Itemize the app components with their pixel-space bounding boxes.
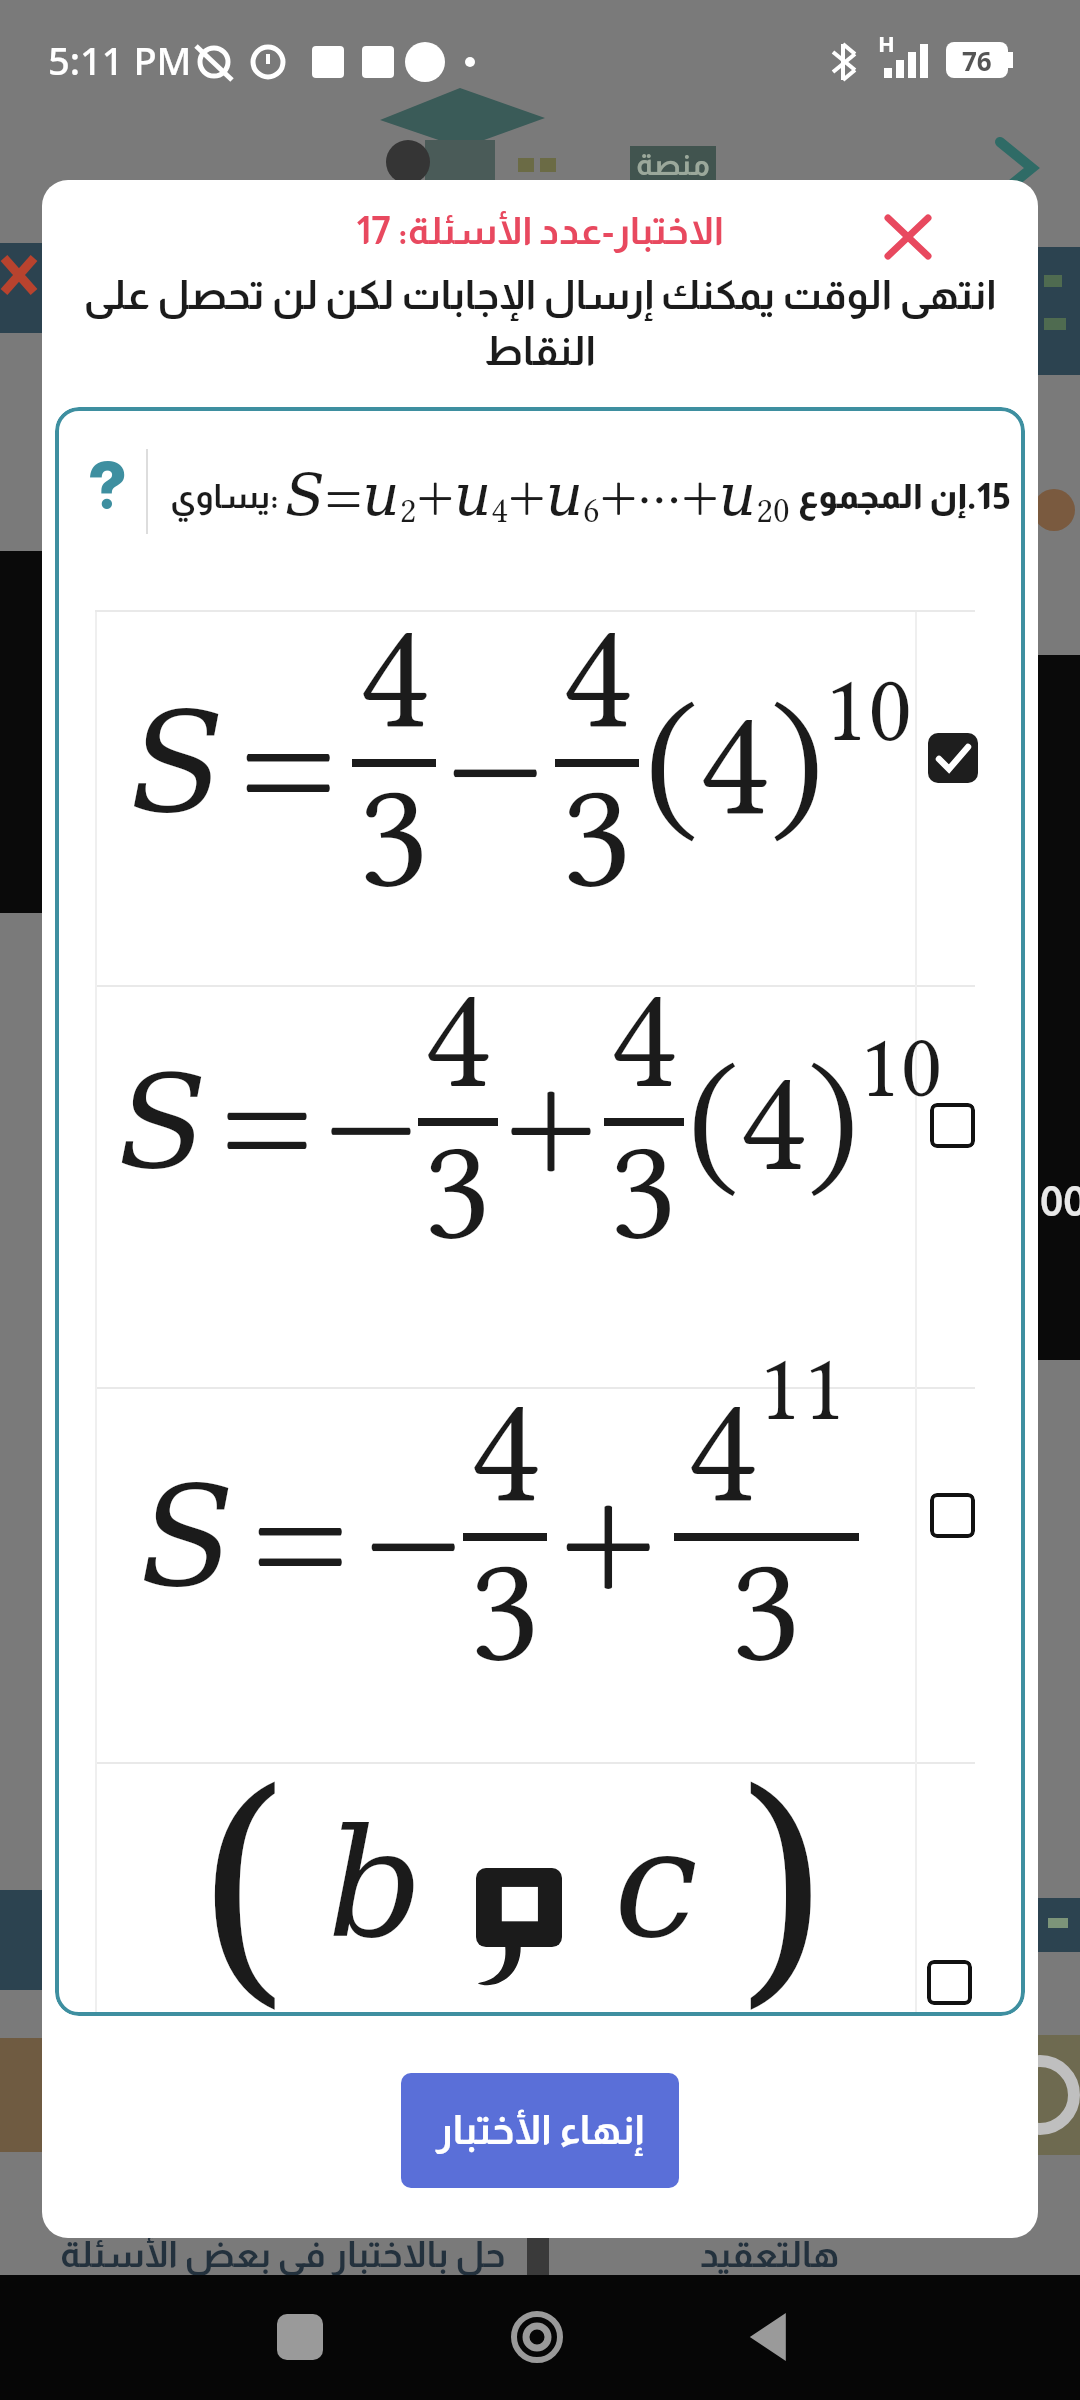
staticText: 11 [758,1334,847,1442]
staticText: 3 [610,1108,678,1273]
button[interactable] [930,1103,975,1148]
staticText: 4 [359,590,430,763]
staticText: يساوي: [170,478,279,515]
staticText: S [140,1457,235,1618]
staticText: 3 [424,1108,492,1273]
staticText: = [251,1451,350,1624]
staticText: + [504,1039,598,1204]
staticText: 3 [731,1523,802,1696]
staticText: S [130,683,225,844]
staticText: b [327,1797,424,1972]
staticText: 76 [962,43,992,78]
staticText: − [446,677,545,850]
staticText: 4 [470,1364,541,1537]
staticText: S [118,1046,208,1197]
staticText: 3 [359,749,430,922]
staticText: = [239,677,338,850]
button[interactable] [928,733,978,783]
staticText: − [324,1039,418,1204]
staticText: إن المجموع [798,477,967,515]
staticText: 3 [470,1523,541,1696]
staticText: (4) [688,1039,859,1204]
staticText: ) [733,1739,831,2016]
staticText: S=u2+u4+u6+⋯+u20 [285,461,790,531]
staticText: + [559,1451,658,1624]
button[interactable] [277,2314,323,2360]
staticText: H [878,28,895,58]
staticText: ? [87,449,127,523]
staticText: 10 [824,655,913,763]
button[interactable]: إنهاء الأختبار [401,2073,679,2188]
staticText: 00 [1040,1178,1080,1225]
staticText: إنهاء الأختبار [436,2108,644,2153]
staticText: انتهى الوقت يمكنك إرسال الإجابات لكن لن … [42,273,1038,373]
staticText: 4 [610,956,678,1121]
button[interactable] [745,2313,793,2361]
staticText: 4 [562,590,633,763]
staticText: منصة [636,148,710,181]
staticText: − [364,1451,463,1624]
staticText: 4 [687,1364,758,1537]
staticText: = [220,1039,314,1204]
button[interactable] [927,1960,972,2005]
staticText: 3 [562,749,633,922]
button[interactable] [930,1493,975,1538]
staticText: (4) [645,677,824,850]
staticText: هالتعقيد [700,2234,840,2274]
staticText: 10 [859,1016,943,1119]
staticText: .15 [967,476,1011,516]
staticText: ( [195,1739,293,2016]
staticText: حل بالاختبار في بعض الأسئلة [60,2234,506,2274]
staticText: c [614,1797,699,1972]
button[interactable] [880,208,936,264]
staticText: 5:11 PM [48,34,192,86]
staticText: 4 [424,956,492,1121]
button[interactable] [513,2313,561,2361]
staticText: الاختبار-عدد الأسئلة: 17 [42,210,1038,252]
